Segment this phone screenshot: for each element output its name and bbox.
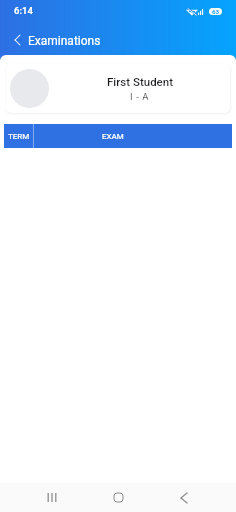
button[interactable]: EXAM [34,124,191,148]
staticText: First Student [107,75,173,88]
staticText: Examinations [28,34,101,48]
staticText: 63 [212,8,220,15]
button[interactable]: Back [5,27,30,52]
staticText: 6:14 [14,5,33,16]
button[interactable]: First Student [6,64,230,113]
button[interactable]: Back [168,483,200,512]
button[interactable]: TERM [4,124,33,148]
button[interactable]: Recent apps [36,483,68,512]
staticText: EXAM [102,132,124,141]
staticText: TERM [8,132,30,141]
staticText: I - A [130,91,150,102]
button[interactable]: Home [102,483,134,512]
